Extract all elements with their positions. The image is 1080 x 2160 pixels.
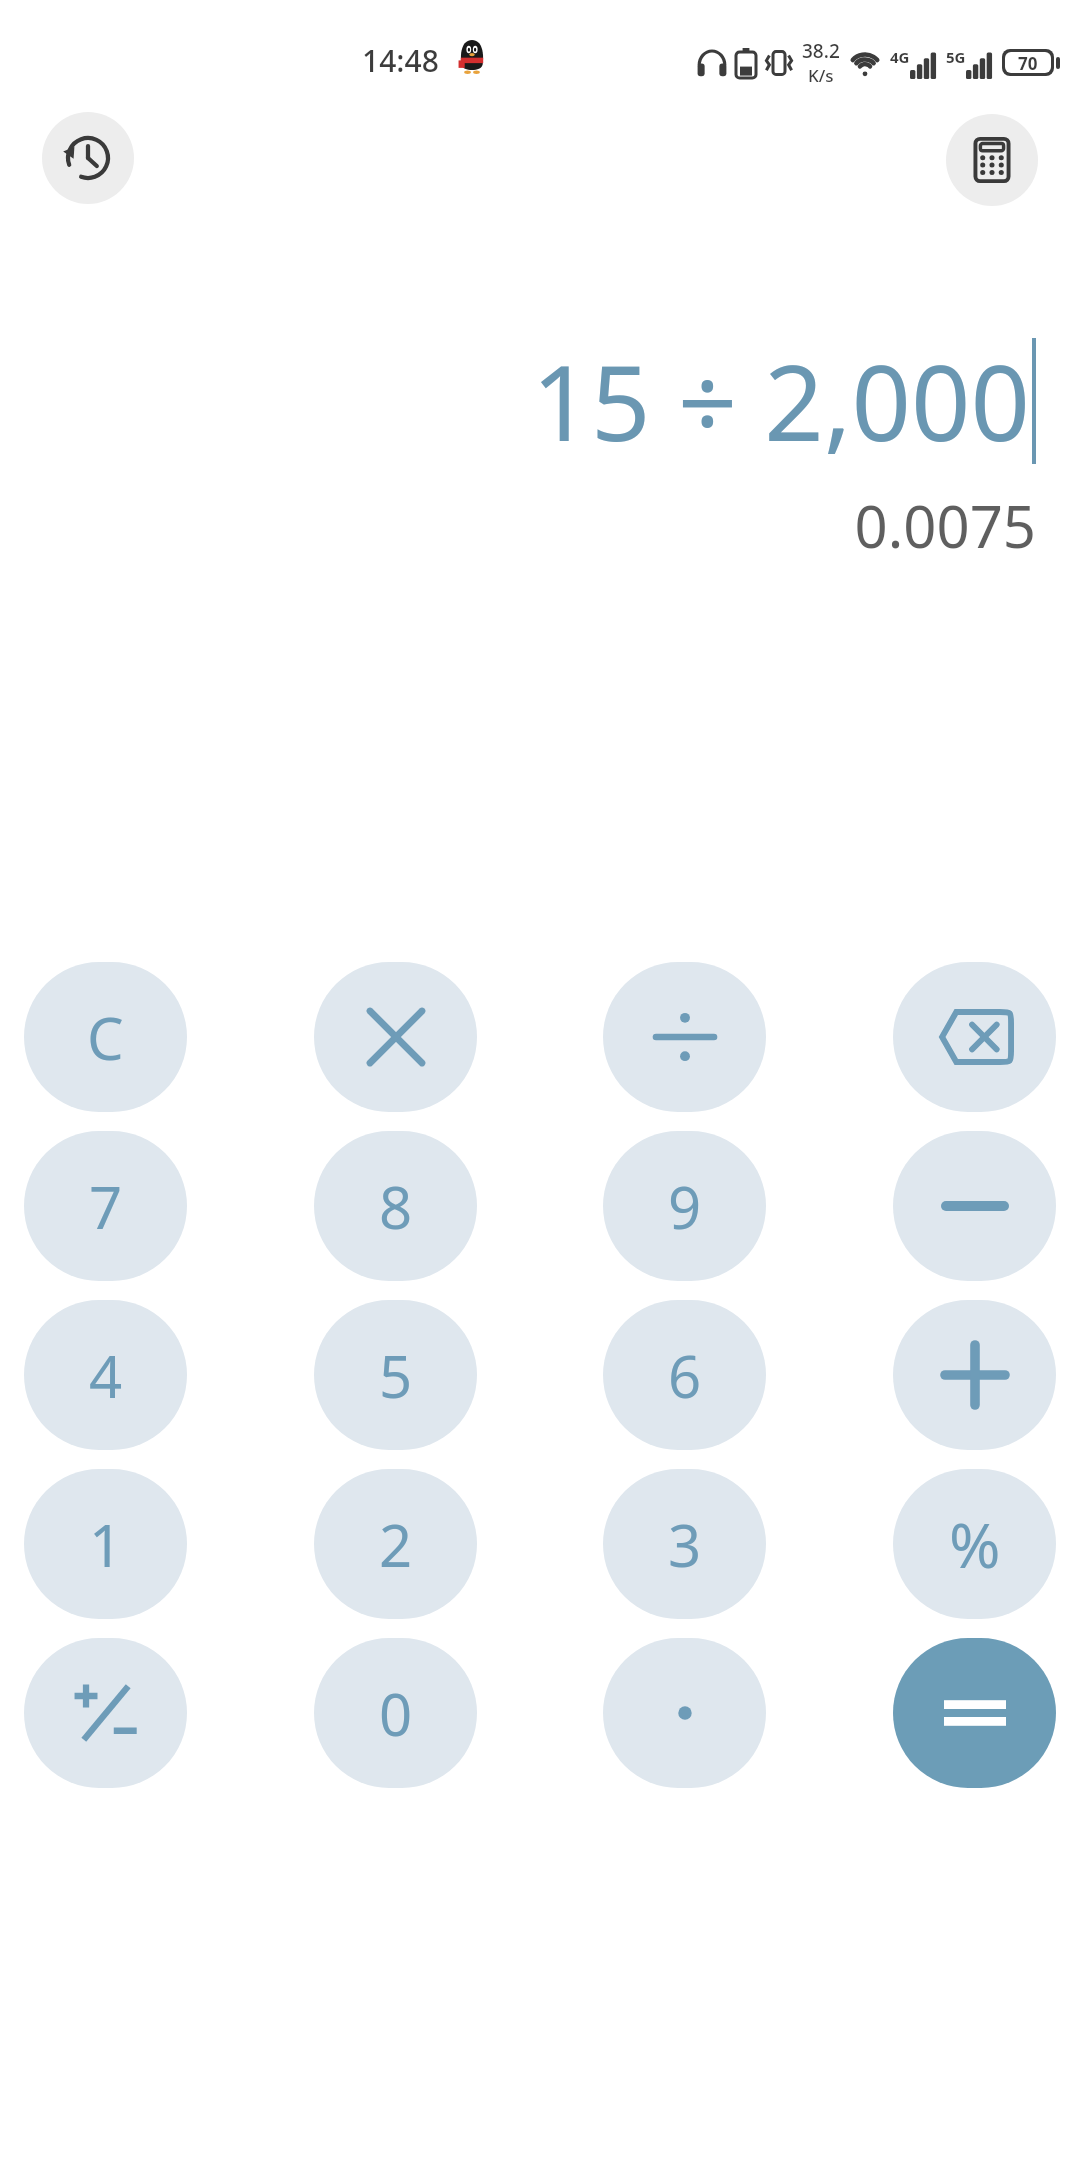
button[interactable]: 9	[603, 1131, 766, 1281]
button[interactable]: 6	[603, 1300, 766, 1450]
staticText: 5	[379, 1336, 413, 1415]
button[interactable]: 1	[24, 1469, 187, 1619]
staticText: 38.2	[802, 38, 840, 64]
button[interactable]	[603, 1638, 766, 1788]
button[interactable]: Equals	[893, 1638, 1056, 1788]
staticText: 8	[379, 1167, 413, 1246]
staticText: 14:48	[362, 40, 439, 81]
button[interactable]	[314, 962, 477, 1112]
button[interactable]: 4	[24, 1300, 187, 1450]
button[interactable]	[893, 1300, 1056, 1450]
button[interactable]	[603, 962, 766, 1112]
button[interactable]: C	[24, 962, 187, 1112]
staticText: 6	[668, 1336, 702, 1415]
staticText: 2	[379, 1505, 413, 1584]
button[interactable]: 8	[314, 1131, 477, 1281]
staticText: 0.0075	[854, 486, 1036, 565]
staticText: 4G	[890, 47, 910, 67]
staticText: C	[87, 998, 124, 1077]
button[interactable]: 7	[24, 1131, 187, 1281]
button[interactable]: 5	[314, 1300, 477, 1450]
staticText: 15 ÷ 2,000	[531, 330, 1030, 472]
button[interactable]: %	[893, 1469, 1056, 1619]
button[interactable]: Calculator mode	[946, 114, 1038, 206]
staticText: %	[949, 1502, 1001, 1586]
button[interactable]: 0	[314, 1638, 477, 1788]
button[interactable]: 3	[603, 1469, 766, 1619]
staticText: K/s	[808, 64, 834, 87]
staticText: 5G	[946, 47, 966, 67]
button[interactable]: History	[42, 112, 134, 204]
staticText: 0	[379, 1674, 413, 1753]
button[interactable]	[893, 1131, 1056, 1281]
staticText: 7	[89, 1167, 123, 1246]
button[interactable]: Plus minus	[24, 1638, 187, 1788]
staticText: 4	[89, 1336, 123, 1415]
button[interactable]: Delete	[893, 962, 1056, 1112]
staticText: 1	[89, 1505, 123, 1584]
staticText: 3	[668, 1505, 702, 1584]
staticText: 70	[1018, 52, 1038, 73]
staticText: 9	[668, 1167, 702, 1246]
button[interactable]: 2	[314, 1469, 477, 1619]
